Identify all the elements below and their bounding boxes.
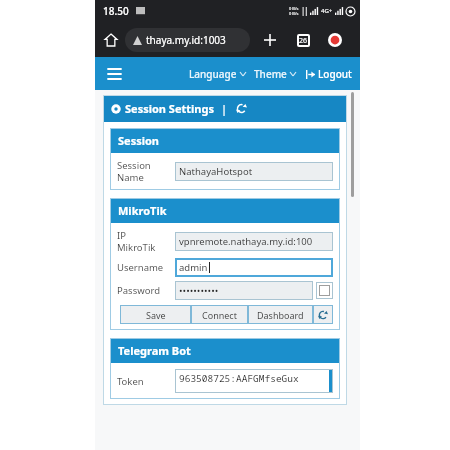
button[interactable]: Tabs [291, 28, 315, 52]
staticText: Logout [318, 67, 352, 81]
button[interactable]: admin [175, 258, 333, 277]
button[interactable]: Show password [316, 282, 333, 299]
staticText: 18.50 [103, 4, 129, 18]
button[interactable]: Refresh connection [313, 305, 333, 324]
staticText: Token [117, 375, 173, 388]
staticText: thaya.my.id:1003 [146, 33, 226, 47]
staticText: 963508725:AAFGMfseGux [179, 372, 299, 385]
button[interactable]: Language [189, 67, 246, 81]
button[interactable]: Theme [254, 67, 296, 81]
staticText: 4G+ [321, 7, 333, 15]
button[interactable]: Menu [103, 63, 125, 85]
staticText: 0 B/s [289, 6, 299, 11]
button[interactable]: Logout [306, 67, 352, 81]
staticText: Theme [254, 67, 287, 81]
button[interactable]: vpnremote.nathaya.my.id:100 [175, 232, 333, 251]
button[interactable]: ••••••••••• [175, 281, 313, 300]
staticText: | [221, 101, 228, 116]
staticText: ••••••••••• [179, 284, 219, 297]
button[interactable]: Dashboard [248, 305, 313, 324]
staticText: Username [117, 261, 173, 274]
staticText: IP MikroTik [117, 229, 173, 254]
staticText: Save [146, 309, 166, 321]
staticText: Session Settings [125, 101, 214, 116]
staticText: MikroTik [118, 203, 167, 218]
button[interactable]: NathayaHotspot [175, 162, 333, 181]
staticText: Session Name [117, 159, 173, 184]
staticText: 0 B/s [289, 11, 299, 16]
button[interactable]: Home [99, 28, 123, 52]
staticText: Telegram Bot [118, 343, 191, 358]
button[interactable]: New tab [258, 28, 282, 52]
staticText: 26 [299, 36, 308, 46]
button[interactable]: Refresh [235, 102, 248, 115]
staticText: Connect [202, 309, 237, 321]
staticText: NathayaHotspot [179, 165, 253, 178]
staticText: Language [189, 67, 237, 81]
button[interactable]: thaya.my.id:1003 [125, 28, 250, 52]
staticText: Dashboard [257, 309, 304, 321]
staticText: Session [118, 133, 159, 148]
staticText: admin [179, 261, 208, 274]
staticText: Password [117, 284, 173, 297]
staticText: vpnremote.nathaya.my.id:100 [179, 235, 313, 248]
button[interactable]: Profile [323, 28, 347, 52]
button[interactable]: Connect [191, 305, 248, 324]
button[interactable]: Save [120, 305, 191, 324]
